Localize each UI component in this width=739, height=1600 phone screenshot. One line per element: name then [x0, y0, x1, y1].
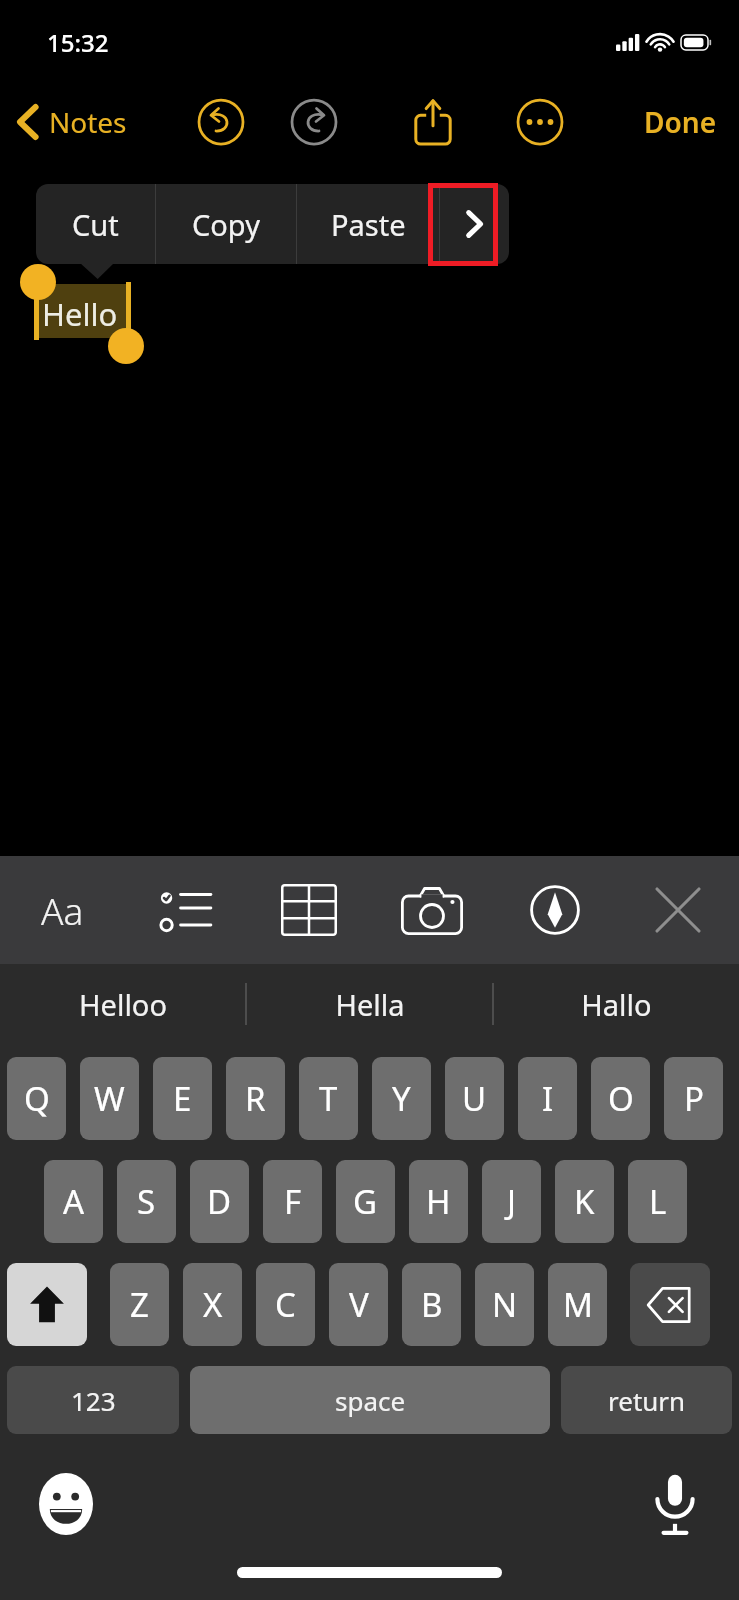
button[interactable]: R	[226, 1057, 285, 1140]
button[interactable]: E	[153, 1057, 212, 1140]
staticText: P	[684, 1076, 704, 1121]
button[interactable]: Notes	[0, 95, 137, 149]
staticText: C	[275, 1282, 296, 1327]
button[interactable]: M	[548, 1263, 607, 1346]
staticText: Q	[24, 1076, 50, 1121]
button[interactable]: Hella	[247, 964, 492, 1044]
staticText: I	[542, 1076, 554, 1121]
staticText: Hello	[42, 293, 118, 335]
button[interactable]: Copy	[156, 184, 296, 264]
staticText: T	[319, 1076, 338, 1121]
staticText: S	[137, 1179, 156, 1224]
staticText: L	[649, 1179, 667, 1224]
staticText: K	[574, 1179, 595, 1224]
button[interactable]: 123	[7, 1366, 179, 1434]
staticText: M	[563, 1282, 593, 1327]
staticText: E	[173, 1076, 192, 1121]
staticText: V	[349, 1282, 369, 1327]
staticText: Done	[644, 103, 717, 141]
button[interactable]: X	[183, 1263, 242, 1346]
button[interactable]: Done	[622, 93, 739, 151]
staticText: F	[284, 1179, 302, 1224]
staticText: space	[335, 1383, 406, 1418]
button[interactable]: D	[190, 1160, 249, 1243]
button[interactable]: Q	[7, 1057, 66, 1140]
staticText: R	[245, 1076, 266, 1121]
staticText: D	[207, 1179, 232, 1224]
staticText: A	[63, 1179, 85, 1224]
button[interactable]: K	[555, 1160, 614, 1243]
staticText: 123	[71, 1383, 116, 1418]
button[interactable]: Text format	[0, 856, 124, 964]
button[interactable]: Camera	[370, 856, 493, 964]
button[interactable]: return	[561, 1366, 732, 1434]
staticText: G	[353, 1179, 378, 1224]
button[interactable]: Table	[247, 856, 370, 964]
button[interactable]: Close	[616, 856, 739, 964]
staticText: return	[608, 1383, 686, 1418]
button[interactable]: space	[190, 1366, 550, 1434]
staticText: Paste	[331, 205, 406, 244]
staticText: Y	[392, 1076, 411, 1121]
button[interactable]: S	[117, 1160, 176, 1243]
staticText: 15:32	[47, 26, 109, 59]
button[interactable]: More options	[505, 87, 575, 157]
button[interactable]: J	[482, 1160, 541, 1243]
button[interactable]: Emoji keyboard	[28, 1466, 104, 1542]
button[interactable]: T	[299, 1057, 358, 1140]
button[interactable]: More actions	[440, 184, 509, 264]
button[interactable]: Y	[372, 1057, 431, 1140]
button[interactable]: U	[445, 1057, 504, 1140]
button[interactable]: C	[256, 1263, 315, 1346]
button[interactable]: I	[518, 1057, 577, 1140]
button[interactable]: Redo	[279, 87, 349, 157]
button[interactable]: Shift	[7, 1263, 87, 1346]
staticText: Hallo	[581, 985, 652, 1024]
staticText: U	[462, 1076, 487, 1121]
staticText: O	[608, 1076, 634, 1121]
staticText: Copy	[192, 205, 260, 244]
button[interactable]: P	[664, 1057, 723, 1140]
button[interactable]: Hallo	[494, 964, 739, 1044]
button[interactable]: O	[591, 1057, 650, 1140]
button[interactable]: B	[402, 1263, 461, 1346]
staticText: Aa	[41, 885, 84, 935]
staticText: B	[421, 1282, 443, 1327]
button[interactable]: V	[329, 1263, 388, 1346]
button[interactable]: Markup	[493, 856, 616, 964]
button[interactable]: Dictation	[637, 1466, 713, 1542]
button[interactable]: G	[336, 1160, 395, 1243]
staticText: Helloo	[79, 985, 167, 1024]
button[interactable]: Undo	[186, 87, 256, 157]
button[interactable]: A	[44, 1160, 103, 1243]
button[interactable]: L	[628, 1160, 687, 1243]
staticText: Z	[130, 1282, 149, 1327]
button[interactable]: Checklist	[124, 856, 247, 964]
staticText: X	[203, 1282, 223, 1327]
staticText: N	[492, 1282, 518, 1327]
staticText: H	[426, 1179, 451, 1224]
staticText: Hella	[335, 985, 405, 1024]
button[interactable]: Backspace	[630, 1263, 710, 1346]
button[interactable]: Z	[110, 1263, 169, 1346]
button[interactable]: Share	[398, 87, 468, 157]
button[interactable]: F	[263, 1160, 322, 1243]
button[interactable]: W	[80, 1057, 139, 1140]
button[interactable]: N	[475, 1263, 534, 1346]
staticText: W	[94, 1076, 125, 1121]
staticText: J	[507, 1179, 517, 1224]
staticText: Notes	[49, 103, 127, 141]
staticText: Cut	[72, 205, 119, 244]
button[interactable]: Helloo	[0, 964, 245, 1044]
button[interactable]: Cut	[36, 184, 155, 264]
button[interactable]: H	[409, 1160, 468, 1243]
button[interactable]: Paste	[297, 184, 439, 264]
